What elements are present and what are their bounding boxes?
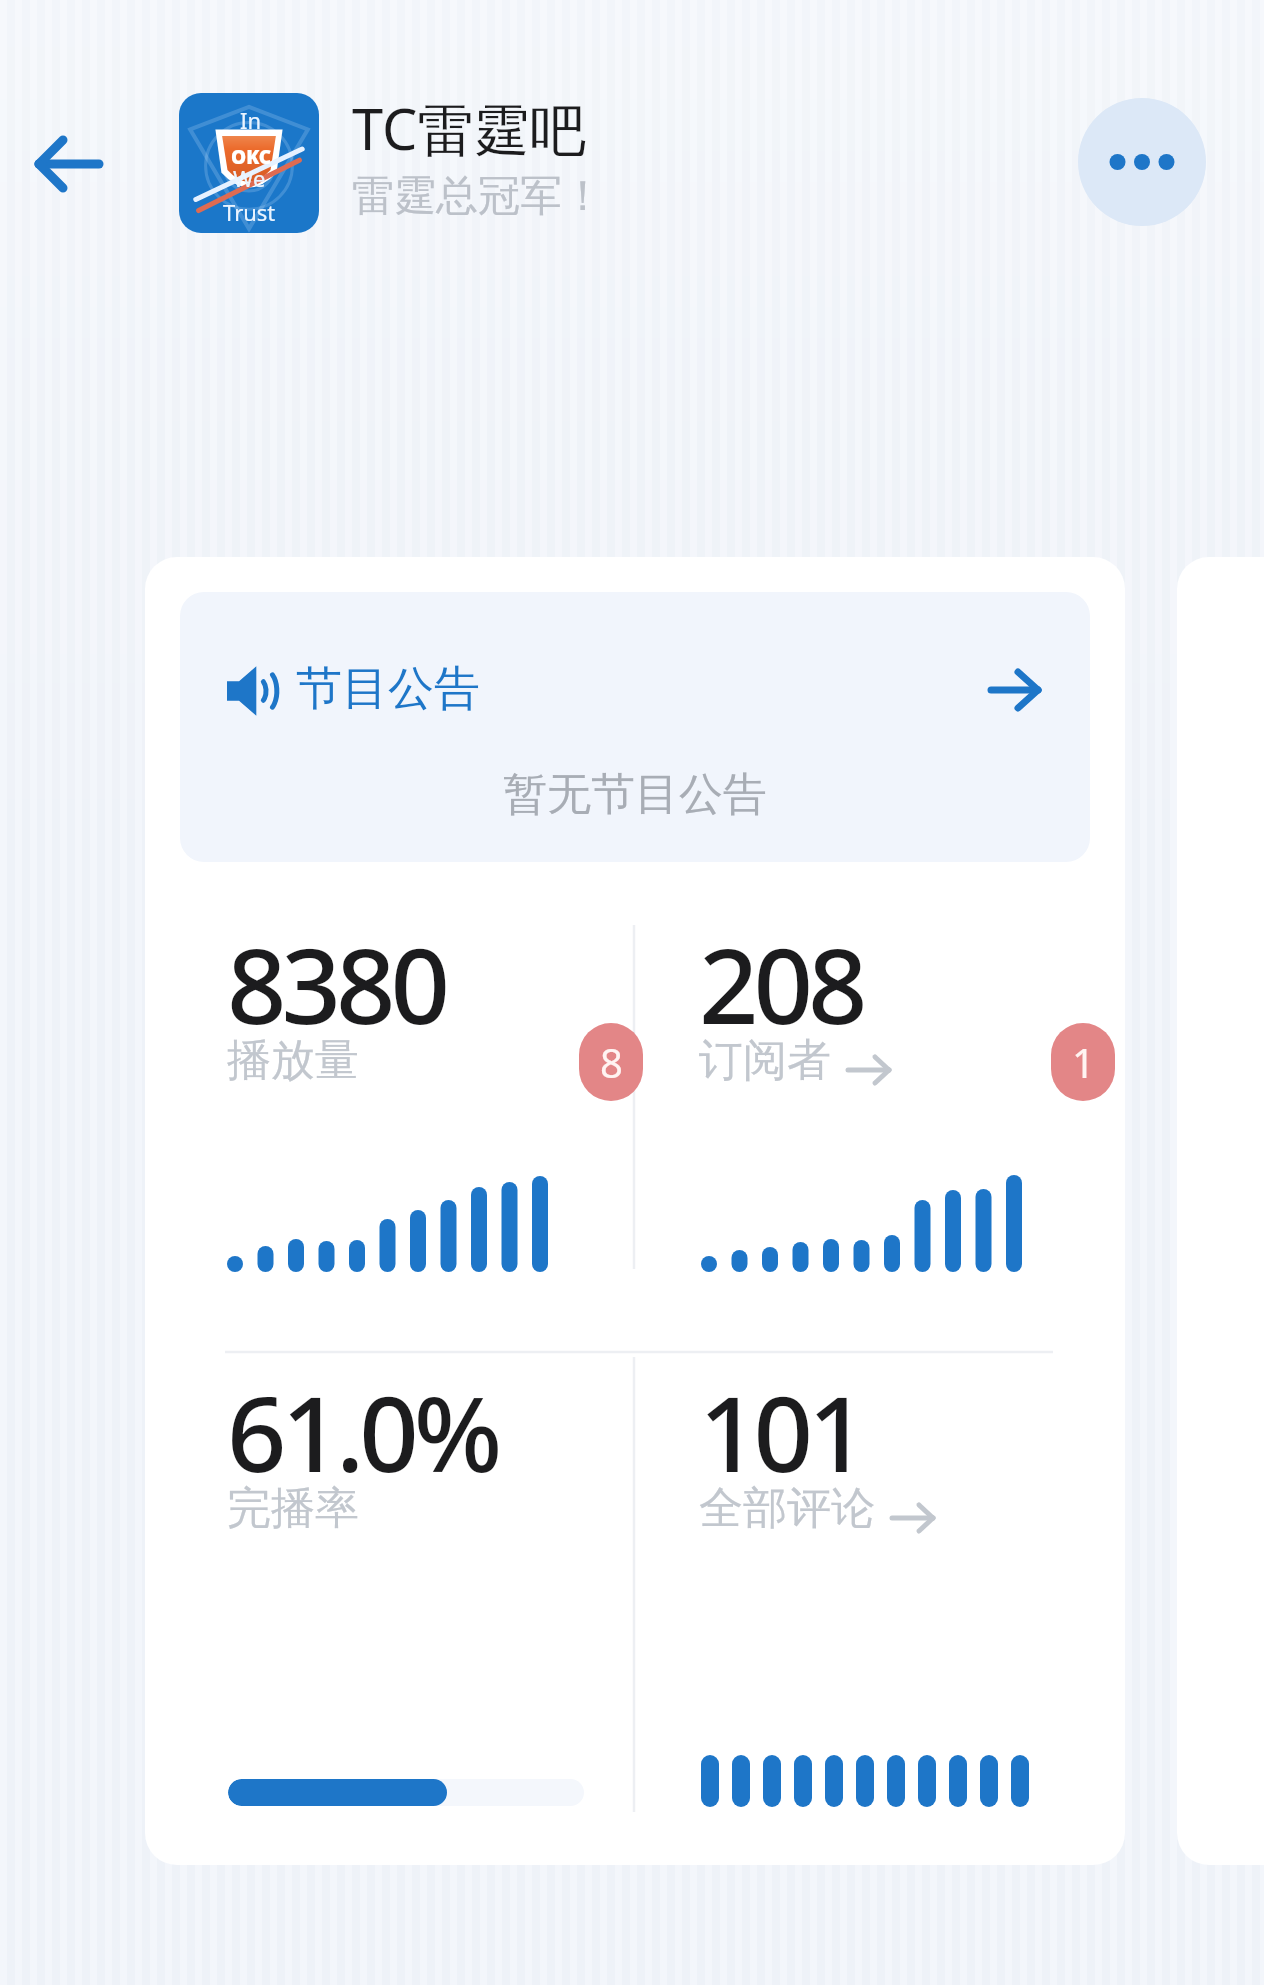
staticText: 完播率 xyxy=(227,1481,359,1536)
staticText: 8 xyxy=(600,1035,623,1089)
button[interactable]: TC雷霆吧 xyxy=(352,82,822,232)
button[interactable]: Channel avatar xyxy=(179,93,319,233)
button[interactable]: Back xyxy=(22,118,114,210)
staticText: In xyxy=(240,105,262,135)
staticText: 8380 xyxy=(227,913,445,1055)
staticText: 61.0% xyxy=(227,1361,498,1503)
staticText: 节目公告 xyxy=(296,660,480,718)
staticText: We xyxy=(233,163,266,193)
button[interactable]: 节目公告 xyxy=(180,592,1090,862)
staticText: 播放量 xyxy=(227,1033,359,1088)
staticText: 全部评论 xyxy=(699,1481,875,1536)
staticText: Trust xyxy=(223,197,276,227)
button[interactable]: More options xyxy=(1078,98,1206,226)
staticText: 雷霆总冠军！ xyxy=(352,170,604,223)
staticText: 暂无节目公告 xyxy=(180,767,1090,862)
staticText: 订阅者 xyxy=(699,1033,831,1088)
staticText: 208 xyxy=(699,913,863,1055)
staticText: OKC xyxy=(231,144,272,170)
button[interactable]: 8380 xyxy=(227,929,647,1119)
button[interactable]: 101 xyxy=(699,1377,1119,1567)
staticText: 101 xyxy=(699,1361,863,1503)
button[interactable]: Open announcements xyxy=(975,656,1055,724)
staticText: TC雷霆吧 xyxy=(352,90,586,166)
button[interactable]: 61.0% xyxy=(227,1377,647,1567)
staticText: 1 xyxy=(1072,1035,1095,1089)
button[interactable]: 208 xyxy=(699,929,1119,1119)
